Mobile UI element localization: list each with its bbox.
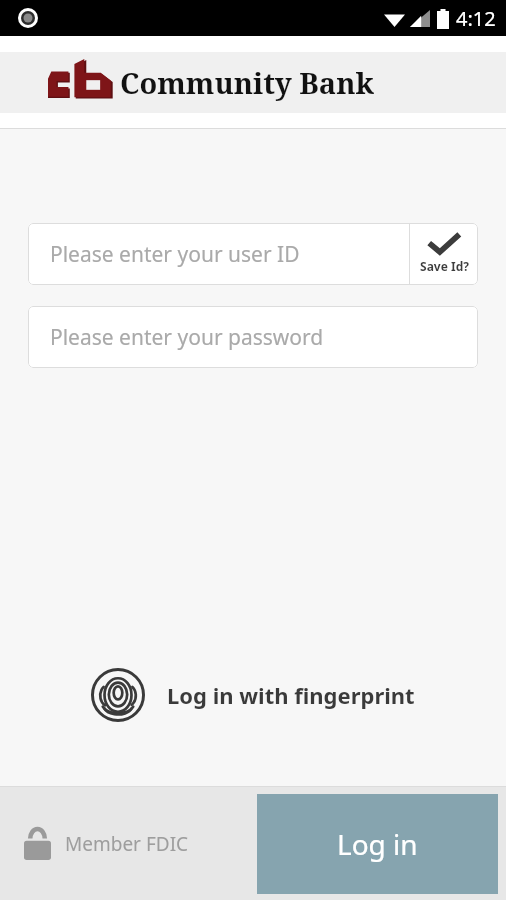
button[interactable]: Log in with fingerprint [0, 668, 506, 722]
staticText: Member FDIC [65, 831, 189, 857]
button[interactable]: Save Id [410, 223, 478, 285]
staticText: Save Id? [420, 258, 469, 274]
staticText: Log in with fingerprint [167, 680, 415, 710]
button[interactable]: Please enter your password [28, 306, 478, 368]
button[interactable]: Log in [257, 794, 498, 894]
staticText: Community Bank [120, 63, 375, 102]
staticText: Please enter your password [50, 323, 324, 352]
staticText: Log in [337, 825, 418, 863]
staticText: Please enter your user ID [50, 240, 300, 269]
staticText: 4:12 [456, 5, 496, 32]
button[interactable]: Member FDIC [24, 827, 189, 860]
button[interactable]: Please enter your user ID [28, 223, 409, 285]
